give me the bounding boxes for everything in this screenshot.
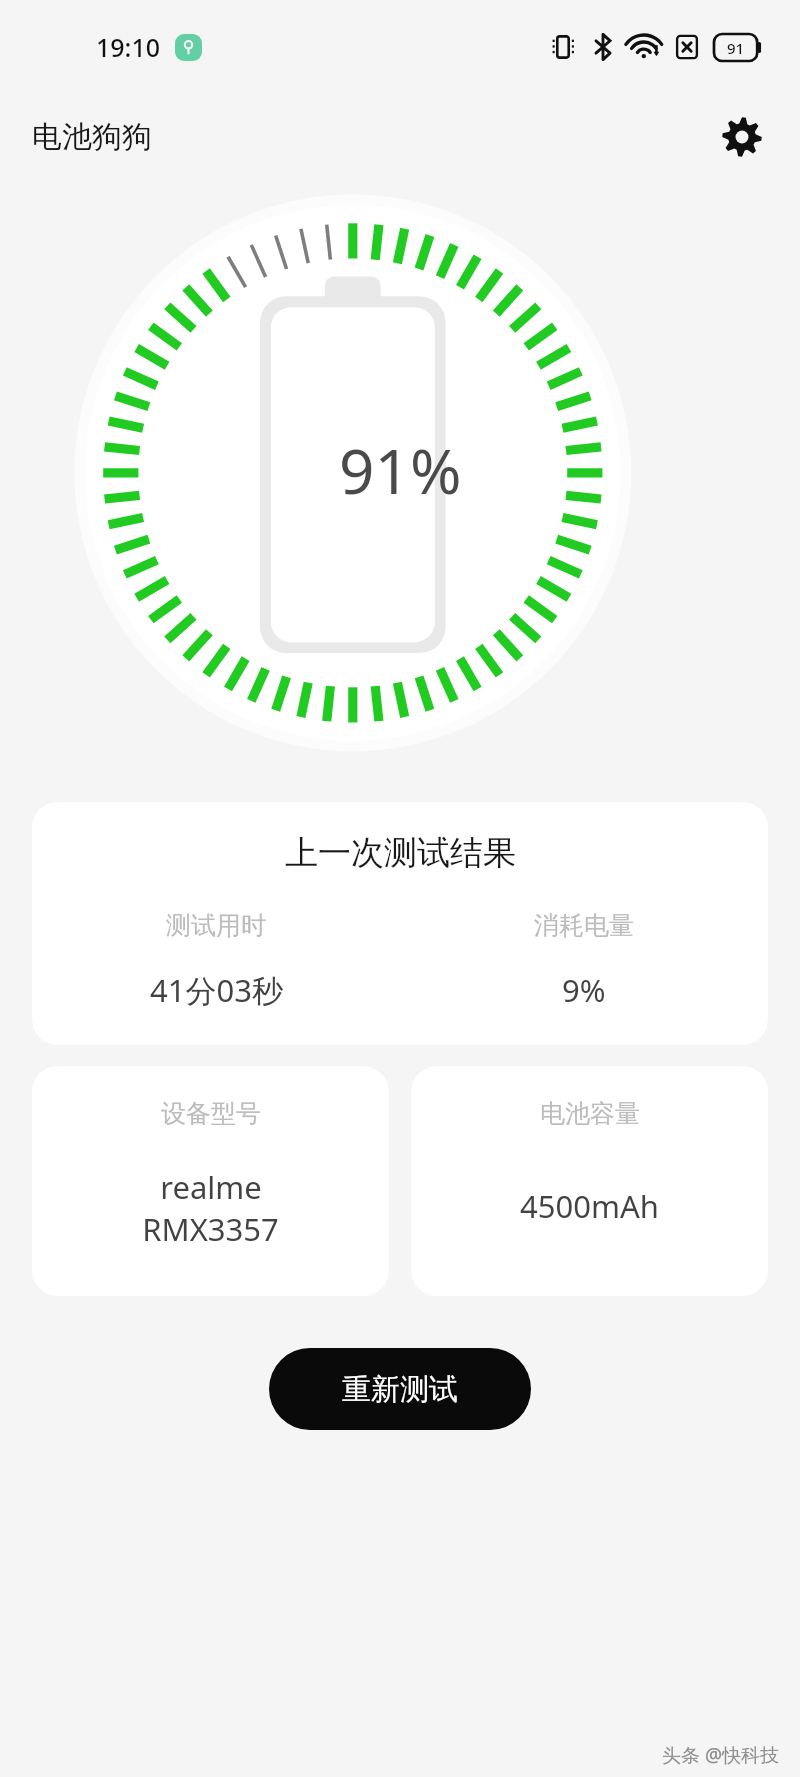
other: Wi-Fi [630, 34, 660, 60]
button[interactable]: 电池容量 [411, 1066, 768, 1296]
staticText: 9% [562, 969, 606, 1011]
staticText: 设备型号 [161, 1098, 261, 1129]
other: Bluetooth [592, 33, 614, 61]
staticText: 91 [727, 38, 745, 58]
button[interactable]: 上一次测试结果 [32, 802, 768, 1045]
staticText: 电池容量 [540, 1098, 640, 1129]
button[interactable]: 设备型号 [32, 1066, 389, 1296]
staticText: 重新测试 [342, 1371, 458, 1408]
staticText: 消耗电量 [534, 910, 634, 941]
staticText: 19:10 [96, 30, 161, 64]
other: Vibrate [550, 33, 576, 61]
button[interactable]: Settings [714, 109, 770, 165]
other: No SIM [674, 33, 700, 61]
staticText: 4500mAh [520, 1185, 659, 1227]
staticText: realme [160, 1166, 262, 1208]
staticText: 41分03秒 [150, 969, 283, 1011]
other: Battery 91 percent [714, 34, 762, 61]
staticText: 头条 @快科技 [662, 1742, 780, 1768]
staticText: 上一次测试结果 [285, 832, 516, 874]
staticText: 测试用时 [166, 910, 266, 941]
button[interactable]: 重新测试 [269, 1348, 531, 1430]
staticText: 电池狗狗 [32, 118, 152, 156]
staticText: RMX3357 [142, 1208, 279, 1250]
staticText: 91% [339, 428, 462, 512]
